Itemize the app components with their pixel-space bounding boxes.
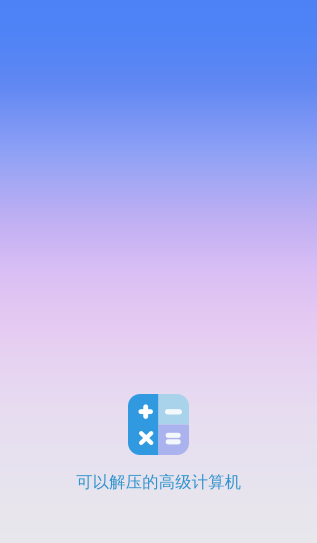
staticText: 可以解压的高级计算机 xyxy=(76,472,241,492)
